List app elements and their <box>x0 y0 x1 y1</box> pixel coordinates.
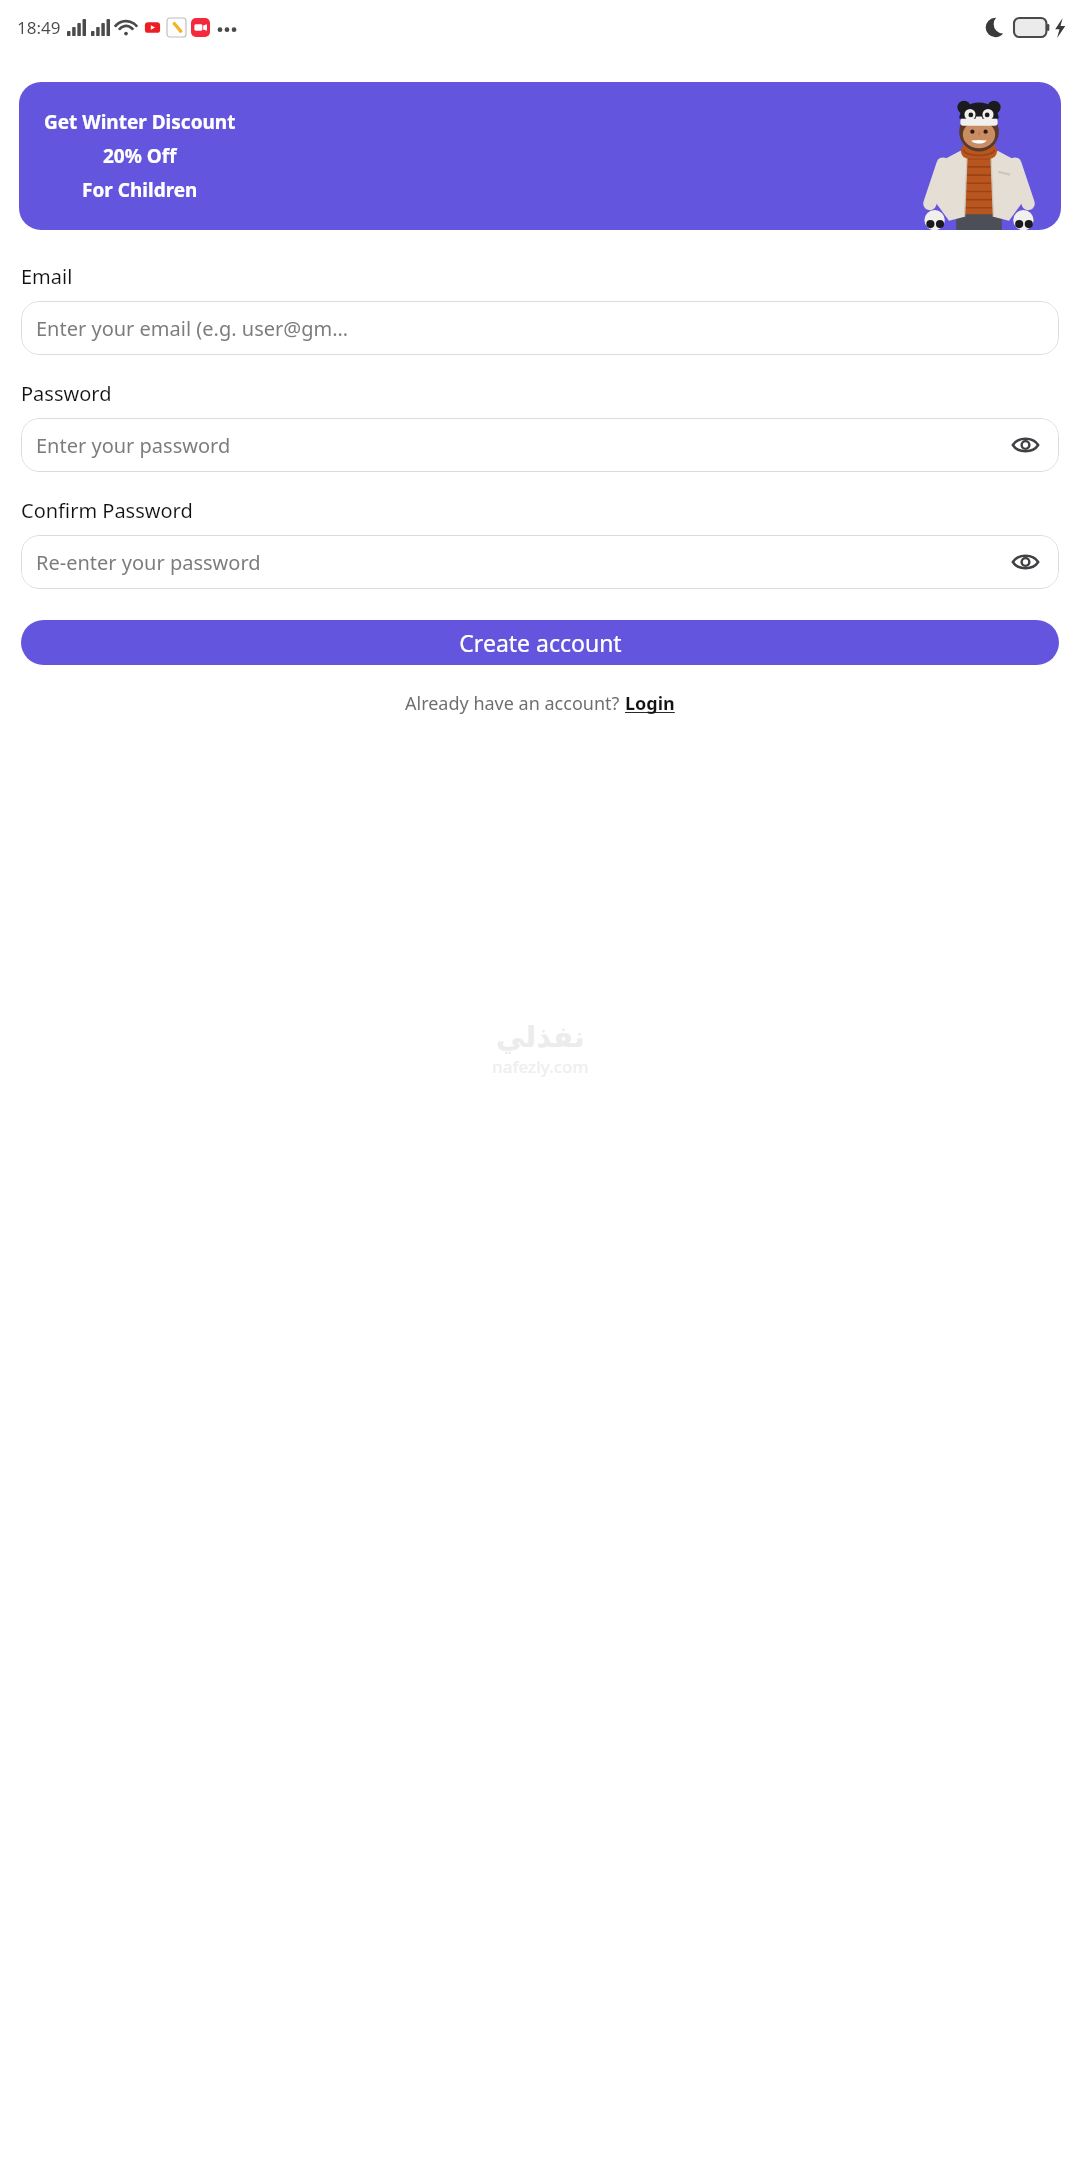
button[interactable]: Re-enter your password <box>21 535 1059 589</box>
staticText: Confirm Password <box>21 497 193 524</box>
staticText: Get Winter Discount <box>44 109 236 135</box>
staticText: Enter your password <box>36 432 231 459</box>
staticText: Password <box>21 380 112 407</box>
button[interactable]: Login <box>625 691 675 716</box>
button[interactable]: Show confirm password <box>1005 542 1045 582</box>
staticText: For Children <box>82 177 198 203</box>
staticText: Create account <box>459 627 622 658</box>
staticText: نفذلي <box>496 1020 585 1054</box>
button[interactable]: Enter your password <box>21 418 1059 472</box>
staticText: Re-enter your password <box>36 549 261 576</box>
staticText: nafezly.com <box>492 1055 589 1078</box>
staticText: Login <box>625 691 675 716</box>
staticText: Email <box>21 263 73 290</box>
staticText: 18:49 <box>17 16 61 39</box>
button[interactable]: Create account <box>21 620 1059 665</box>
button[interactable]: Show password <box>1005 425 1045 465</box>
staticText: Already have an account? <box>405 691 625 716</box>
button[interactable]: Enter your email (e.g. user@gm… <box>21 301 1059 355</box>
button[interactable]: Get Winter Discount <box>19 82 1061 230</box>
staticText: Enter your email (e.g. user@gm… <box>36 315 349 342</box>
staticText: 20% Off <box>103 143 177 169</box>
